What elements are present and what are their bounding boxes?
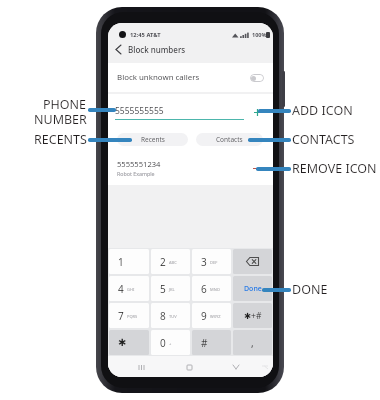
button[interactable]: Switch keyboard — [257, 359, 273, 375]
staticText: 4 — [118, 282, 124, 296]
other: Back — [108, 41, 128, 58]
staticText: DEF — [210, 260, 218, 265]
button[interactable]: Recents — [133, 359, 149, 375]
staticText: 2 — [160, 255, 166, 269]
button[interactable]: 7 — [109, 303, 149, 328]
button[interactable]: Delete — [233, 249, 272, 274]
staticText: 6 — [201, 282, 207, 296]
staticText: Robot Example — [117, 170, 155, 177]
staticText: ABC — [169, 260, 177, 265]
staticText: 3 — [201, 255, 207, 269]
staticText: 0 — [160, 336, 166, 350]
staticText: 5555555555 — [115, 105, 164, 117]
staticText: 1 — [118, 255, 124, 269]
staticText: TUV — [169, 314, 177, 319]
button[interactable]: Contacts — [196, 133, 263, 146]
button[interactable]: 8 — [151, 303, 190, 328]
button[interactable]: Recents — [117, 133, 188, 146]
staticText: Done — [244, 284, 262, 294]
staticText: 12:45 AT&T — [130, 31, 161, 39]
staticText: GHI — [127, 287, 135, 292]
staticText: WXYZ — [210, 314, 221, 319]
button[interactable]: Add number — [249, 104, 265, 120]
button[interactable]: Home — [181, 359, 197, 375]
button[interactable]: 5555551234 — [108, 157, 273, 179]
button[interactable]: 3 — [192, 249, 231, 274]
button[interactable]: Done — [233, 276, 272, 301]
staticText: Contacts — [216, 135, 243, 144]
button[interactable]: Hide keyboard — [228, 359, 244, 375]
staticText: Block numbers — [128, 44, 186, 55]
staticText: PQRS — [127, 314, 138, 319]
button[interactable]: , — [233, 330, 272, 355]
staticText: REMOVE ICON — [292, 160, 377, 177]
button[interactable]: ✱+# — [233, 303, 272, 328]
staticText: Recents — [141, 135, 165, 144]
staticText: 8 — [160, 309, 166, 323]
staticText: 100% — [252, 31, 267, 38]
staticText: # — [201, 336, 208, 350]
button[interactable]: 4 — [109, 276, 149, 301]
staticText: CONTACTS — [292, 131, 355, 148]
button[interactable]: ✱ — [109, 330, 149, 355]
button[interactable]: Block unknown callers — [108, 63, 273, 92]
button[interactable]: 1 — [109, 249, 149, 274]
button[interactable]: 0 — [151, 330, 190, 355]
button[interactable]: 2 — [151, 249, 190, 274]
staticText: ✱ — [118, 337, 127, 349]
button[interactable]: 5 — [151, 276, 190, 301]
other: Delete — [233, 249, 272, 274]
staticText: , — [251, 336, 254, 350]
staticText: NUMBER — [34, 111, 87, 128]
button[interactable]: Back — [108, 41, 273, 58]
staticText: 5 — [160, 282, 166, 296]
staticText: RECENTS — [34, 131, 87, 148]
staticText: MNO — [210, 287, 220, 292]
staticText: 9 — [201, 309, 207, 323]
button[interactable]: 6 — [192, 276, 231, 301]
button[interactable]: Remove number — [250, 161, 264, 175]
staticText: + — [169, 341, 172, 346]
staticText: Block unknown callers — [117, 72, 200, 83]
staticText: DONE — [292, 281, 328, 298]
staticText: JKL — [169, 287, 175, 292]
button[interactable]: 9 — [192, 303, 231, 328]
button[interactable]: # — [192, 330, 231, 355]
staticText: 7 — [118, 309, 124, 323]
staticText: 5555551234 — [117, 159, 161, 169]
staticText: ✱+# — [244, 310, 262, 322]
staticText: PHONE — [43, 96, 87, 113]
staticText: ADD ICON — [292, 102, 353, 119]
